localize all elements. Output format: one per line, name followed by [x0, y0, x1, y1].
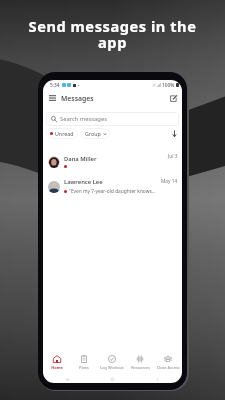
- button[interactable]: Log Workout: [98, 352, 126, 373]
- button[interactable]: Search messages: [46, 112, 179, 126]
- button[interactable]: Plans: [70, 352, 98, 373]
- staticText: Lawrence Lee: [64, 178, 103, 186]
- button[interactable]: Resources: [126, 352, 154, 373]
- button[interactable]: Sort: [169, 128, 180, 139]
- button[interactable]: Dana Miller: [43, 149, 182, 174]
- staticText: Door Access: [157, 365, 180, 370]
- button[interactable]: Unread: [46, 128, 78, 139]
- staticText: Log Workout: [100, 365, 124, 370]
- staticText: Search messages: [60, 115, 107, 123]
- staticText: Send messages in the app: [5, 16, 220, 52]
- button[interactable]: Compose message: [168, 93, 179, 104]
- staticText: Resources: [131, 365, 150, 370]
- staticText: Jul 3: [168, 153, 178, 160]
- button[interactable]: Door Access: [154, 352, 182, 373]
- staticText: Messages: [61, 94, 94, 103]
- staticText: Group: [85, 130, 101, 137]
- button[interactable]: Lawrence Lee: [43, 174, 182, 199]
- staticText: Plans: [79, 365, 89, 370]
- button[interactable]: Home: [43, 352, 70, 373]
- staticText: May 14: [161, 178, 178, 185]
- staticText: 100%: [162, 82, 175, 88]
- staticText: Unread: [55, 130, 74, 137]
- staticText: Home: [51, 365, 63, 370]
- staticText: "Even my 7-year-old daughter knows...: [69, 188, 156, 195]
- staticText: 5:34: [50, 82, 60, 88]
- staticText: Dana Miller: [64, 155, 97, 163]
- button[interactable]: Group: [81, 128, 110, 139]
- button[interactable]: Menu: [47, 93, 57, 103]
